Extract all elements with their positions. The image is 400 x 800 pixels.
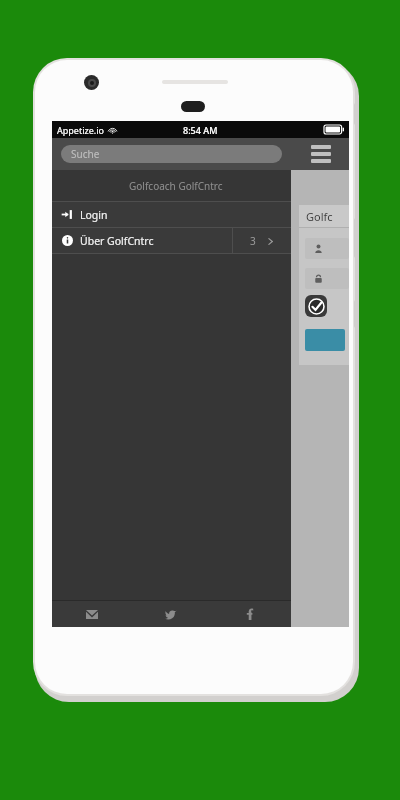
button[interactable]: Facebook <box>210 601 289 627</box>
button[interactable]: Email <box>52 601 131 627</box>
button[interactable] <box>305 268 349 289</box>
button[interactable]: Über GolfCntrc <box>52 228 291 253</box>
button[interactable]: Menu <box>291 138 349 170</box>
button[interactable]: Login <box>52 202 291 227</box>
staticText: Golfcoach GolfCntrc <box>129 179 223 193</box>
staticText: Appetize.io <box>57 124 104 136</box>
button[interactable]: Remember me <box>305 295 327 317</box>
staticText: 8:54 AM <box>183 124 218 136</box>
button[interactable]: Login <box>305 329 345 351</box>
button[interactable]: Twitter <box>131 601 210 627</box>
staticText: Login <box>80 208 108 222</box>
button[interactable] <box>305 238 349 259</box>
staticText: Suche <box>71 147 100 161</box>
button[interactable]: Suche <box>61 145 282 163</box>
staticText: 3 <box>250 234 256 248</box>
staticText: Golfc <box>306 209 333 224</box>
staticText: Über GolfCntrc <box>80 234 154 248</box>
